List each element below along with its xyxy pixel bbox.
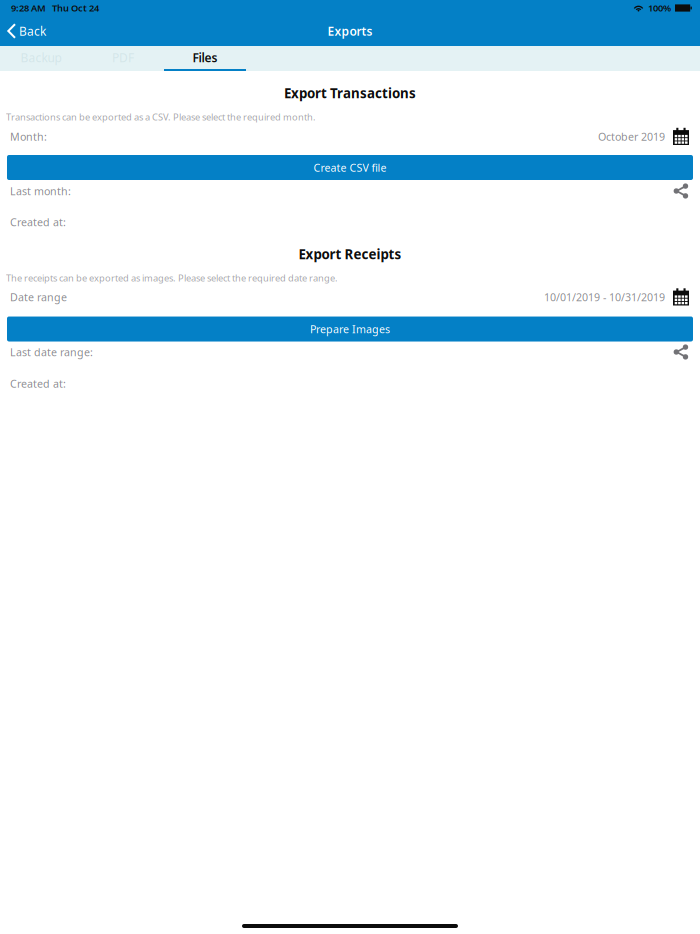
staticText: Created at: (10, 376, 66, 391)
button[interactable]: Backup (0, 46, 82, 71)
staticText: 10/01/2019 - 10/31/2019 (544, 290, 665, 304)
staticText: PDF (112, 49, 134, 65)
staticText: Last month: (10, 184, 71, 198)
staticText: Exports (327, 23, 372, 39)
staticText: Export Receipts (298, 245, 401, 263)
staticText: 100% (648, 2, 671, 14)
button[interactable]: Back (0, 16, 54, 46)
button[interactable]: Files (164, 46, 246, 71)
staticText: 9:28 AM (11, 2, 46, 14)
staticText: Date range (10, 290, 67, 304)
staticText: Back (19, 23, 46, 39)
staticText: Create CSV file (313, 160, 386, 175)
staticText: Transactions can be exported as a CSV. P… (6, 111, 316, 123)
button[interactable]: Share (673, 183, 689, 199)
staticText: Created at: (10, 215, 66, 229)
staticText: Last date range: (10, 345, 93, 359)
button[interactable]: Share (673, 344, 689, 360)
staticText: Month: (10, 129, 47, 144)
button[interactable]: Pick date (665, 127, 689, 145)
staticText: October 2019 (598, 129, 665, 144)
button[interactable]: Create CSV file (7, 155, 693, 180)
staticText: Files (192, 49, 217, 65)
button[interactable]: Prepare Images (7, 316, 693, 341)
staticText: Thu Oct 24 (52, 2, 99, 14)
staticText: Export Transactions (284, 84, 416, 102)
staticText: The receipts can be exported as images. … (6, 272, 338, 284)
staticText: Prepare Images (310, 322, 390, 336)
staticText: Backup (20, 49, 61, 65)
button[interactable]: Pick date (665, 288, 689, 306)
